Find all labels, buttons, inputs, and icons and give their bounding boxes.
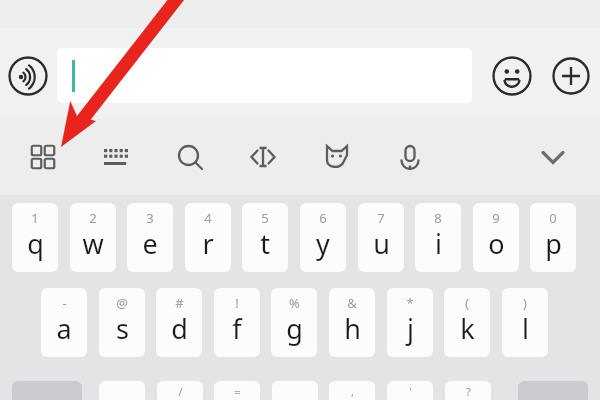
button[interactable]: 2 bbox=[70, 203, 116, 272]
button[interactable]: 1 bbox=[12, 203, 58, 272]
staticText: % bbox=[289, 294, 300, 312]
staticText: s bbox=[116, 310, 129, 347]
staticText: y bbox=[316, 225, 330, 262]
staticText: i bbox=[435, 225, 442, 262]
staticText: 5 bbox=[261, 209, 269, 227]
button[interactable]: Add attachment bbox=[551, 56, 591, 96]
staticText: p bbox=[545, 225, 562, 262]
button[interactable]: - bbox=[41, 288, 87, 357]
button[interactable] bbox=[99, 381, 145, 400]
staticText: t bbox=[260, 225, 270, 262]
button[interactable]: / bbox=[157, 381, 203, 400]
staticText: 9 bbox=[492, 209, 500, 227]
staticText: o bbox=[488, 225, 505, 262]
button[interactable]: Collapse bbox=[531, 135, 575, 179]
staticText: 0 bbox=[549, 209, 557, 227]
staticText: 6 bbox=[319, 209, 327, 227]
staticText: h bbox=[344, 310, 361, 347]
staticText: @ bbox=[116, 294, 128, 312]
button[interactable]: 9 bbox=[473, 203, 519, 272]
staticText: d bbox=[171, 310, 188, 347]
button[interactable]: ) bbox=[502, 288, 548, 357]
button[interactable]: % bbox=[271, 288, 317, 357]
staticText: a bbox=[56, 310, 72, 347]
staticText: w bbox=[82, 225, 104, 262]
staticText: 4 bbox=[204, 209, 212, 227]
staticText: # bbox=[175, 294, 184, 312]
staticText: j bbox=[407, 310, 414, 347]
staticText: l bbox=[522, 310, 529, 347]
staticText: ) bbox=[523, 294, 527, 312]
staticText: 3 bbox=[146, 209, 154, 227]
staticText: e bbox=[142, 225, 158, 262]
button[interactable]: 5 bbox=[242, 203, 288, 272]
button[interactable]: 8 bbox=[415, 203, 461, 272]
button[interactable]: Emoji bbox=[492, 56, 532, 96]
staticText: 2 bbox=[89, 209, 97, 227]
button[interactable]: 6 bbox=[300, 203, 346, 272]
staticText: f bbox=[232, 310, 242, 347]
staticText: & bbox=[347, 294, 357, 312]
staticText: = bbox=[234, 384, 241, 399]
staticText: , bbox=[351, 384, 354, 399]
staticText: 1 bbox=[31, 209, 39, 227]
staticText: ( bbox=[465, 294, 469, 312]
button[interactable]: ( bbox=[444, 288, 490, 357]
staticText: u bbox=[373, 225, 390, 262]
staticText: - bbox=[62, 294, 67, 312]
button[interactable]: 4 bbox=[185, 203, 231, 272]
staticText: ! bbox=[235, 294, 239, 312]
button[interactable]: 7 bbox=[358, 203, 404, 272]
staticText: q bbox=[27, 225, 44, 262]
button[interactable]: 0 bbox=[530, 203, 576, 272]
staticText: / bbox=[178, 384, 183, 399]
button[interactable]: , bbox=[329, 381, 375, 400]
button[interactable]: ? bbox=[445, 381, 491, 400]
button[interactable]: & bbox=[329, 288, 375, 357]
button[interactable]: Apps bbox=[21, 135, 65, 179]
button[interactable]: = bbox=[214, 381, 260, 400]
staticText: r bbox=[202, 225, 214, 262]
button[interactable]: Stickers bbox=[315, 135, 359, 179]
button[interactable]: Search bbox=[168, 135, 212, 179]
staticText: ' bbox=[409, 384, 412, 399]
staticText: g bbox=[286, 310, 303, 347]
button[interactable]: Keyboard themes bbox=[94, 135, 138, 179]
button[interactable]: 3 bbox=[127, 203, 173, 272]
staticText: 7 bbox=[377, 209, 385, 227]
staticText: 8 bbox=[434, 209, 442, 227]
button[interactable]: ! bbox=[214, 288, 260, 357]
staticText: ? bbox=[466, 384, 471, 399]
button[interactable]: * bbox=[387, 288, 433, 357]
button[interactable]: Voice input bbox=[8, 56, 48, 96]
staticText: * bbox=[406, 294, 414, 312]
staticText: k bbox=[460, 310, 475, 347]
button[interactable]: @ bbox=[99, 288, 145, 357]
button[interactable] bbox=[272, 381, 318, 400]
button[interactable]: Voice typing bbox=[388, 135, 432, 179]
button[interactable]: ' bbox=[387, 381, 433, 400]
button[interactable]: Move cursor bbox=[241, 135, 285, 179]
button[interactable]: # bbox=[156, 288, 202, 357]
button[interactable] bbox=[57, 48, 472, 103]
